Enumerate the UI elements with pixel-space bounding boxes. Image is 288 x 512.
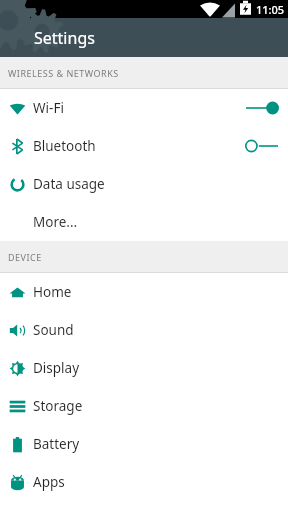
button[interactable]: Wi-Fi <box>0 89 288 127</box>
staticText: Settings <box>34 27 95 49</box>
button[interactable]: Storage <box>0 387 288 425</box>
staticText: Sound <box>33 321 74 339</box>
button[interactable]: Battery <box>0 425 288 463</box>
staticText: Apps <box>33 473 65 491</box>
staticText: 11:05 <box>256 2 285 17</box>
button[interactable]: Home <box>0 273 288 311</box>
button[interactable]: Data usage <box>0 165 288 203</box>
button[interactable]: Apps <box>0 463 288 501</box>
button[interactable]: Bluetooth off <box>240 127 284 165</box>
button[interactable]: Wi-Fi on <box>240 89 284 127</box>
button[interactable]: Bluetooth <box>0 127 288 165</box>
staticText: Bluetooth <box>33 137 96 155</box>
staticText: Wi-Fi <box>33 99 64 117</box>
button[interactable]: Sound <box>0 311 288 349</box>
staticText: Battery <box>33 435 80 453</box>
staticText: WIRELESS & NETWORKS <box>8 67 119 79</box>
staticText: Display <box>33 359 80 377</box>
button[interactable]: More... <box>0 203 288 241</box>
staticText: DEVICE <box>8 251 42 263</box>
staticText: Data usage <box>33 175 105 193</box>
staticText: Storage <box>33 397 83 415</box>
staticText: Home <box>33 283 72 301</box>
staticText: More... <box>33 213 78 231</box>
button[interactable]: Display <box>0 349 288 387</box>
